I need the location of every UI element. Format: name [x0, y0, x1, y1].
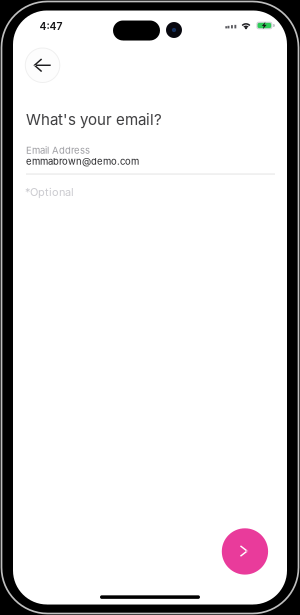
staticText: 4:47	[39, 20, 62, 32]
staticText: *Optional	[25, 185, 74, 199]
button[interactable]: Next	[222, 528, 268, 575]
staticText: What's your email?	[26, 110, 162, 129]
button[interactable]: Back	[25, 48, 60, 82]
staticText: Email Address	[26, 144, 90, 156]
staticText: emmabrown@demo.com	[26, 155, 139, 167]
